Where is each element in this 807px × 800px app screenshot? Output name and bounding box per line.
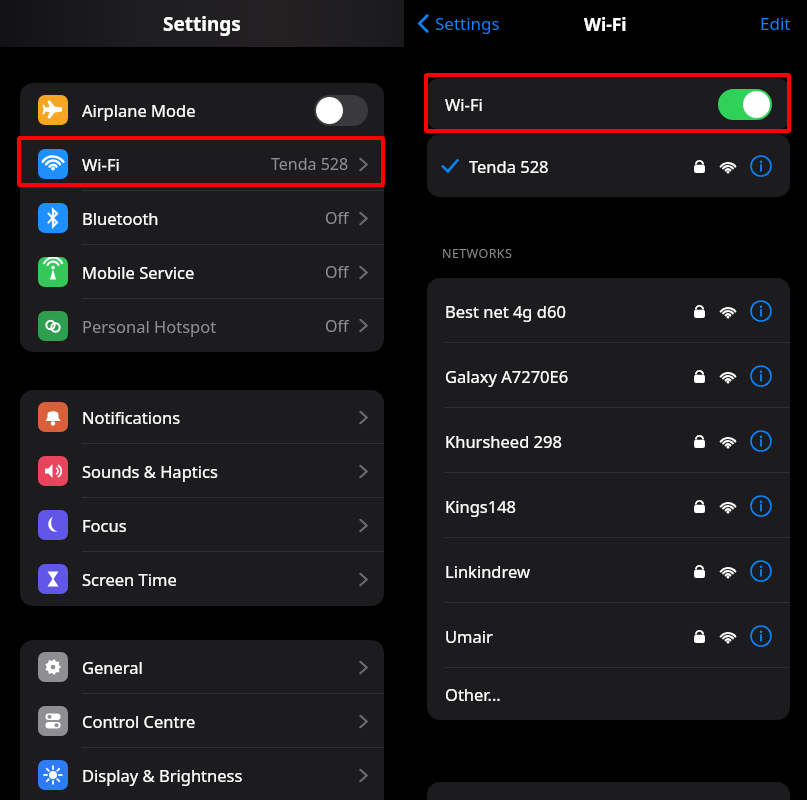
staticText: Personal Hotspot (82, 315, 217, 337)
staticText: Galaxy A7270E6 (445, 365, 569, 387)
staticText: Tenda 528 (469, 155, 549, 177)
button[interactable]: Airplane Mode (20, 83, 384, 137)
staticText: Settings (163, 11, 241, 37)
staticText: Off (325, 207, 349, 229)
staticText: Wi-Fi (445, 93, 483, 115)
button[interactable]: Kings148 (427, 473, 790, 538)
staticText: Mobile Service (82, 261, 195, 283)
staticText: Other... (445, 683, 501, 705)
button[interactable]: Sounds & Haptics (20, 444, 384, 498)
button[interactable]: Display & Brightness (20, 748, 384, 800)
button[interactable]: Notifications (20, 390, 384, 444)
staticText: Wi-Fi (584, 12, 627, 36)
button[interactable]: Edit (760, 12, 791, 35)
button[interactable]: Network info (750, 155, 772, 177)
button[interactable]: Personal Hotspot (20, 299, 384, 352)
button[interactable]: Network info (750, 495, 772, 517)
button[interactable]: Galaxy A7270E6 (427, 343, 790, 408)
staticText: Notifications (82, 406, 181, 428)
button[interactable]: Mobile Service (20, 245, 384, 299)
button[interactable]: General (20, 640, 384, 694)
staticText: Bluetooth (82, 207, 159, 229)
button[interactable]: Focus (20, 498, 384, 552)
staticText: Khursheed 298 (445, 430, 562, 452)
staticText: Edit (760, 12, 791, 35)
button[interactable]: Wi-Fi (445, 78, 772, 130)
button[interactable]: Screen Time (20, 552, 384, 606)
staticText: Airplane Mode (82, 99, 196, 121)
staticText: Off (325, 315, 349, 337)
button[interactable]: Best net 4g d60 (427, 278, 790, 343)
button[interactable]: Control Centre (20, 694, 384, 748)
button[interactable]: Network info (750, 430, 772, 452)
button[interactable]: Network info (750, 560, 772, 582)
staticText: Sounds & Haptics (82, 460, 218, 482)
staticText: Tenda 528 (271, 153, 349, 175)
button[interactable]: Linkindrew (427, 538, 790, 603)
staticText: Off (325, 261, 349, 283)
staticText: Settings (435, 12, 500, 35)
button[interactable]: Network info (750, 625, 772, 647)
staticText: Screen Time (82, 568, 177, 590)
button[interactable]: Wi-Fi (20, 137, 384, 191)
staticText: Focus (82, 514, 127, 536)
staticText: Linkindrew (445, 560, 530, 582)
button[interactable]: Tenda 528 (441, 134, 772, 197)
staticText: Best net 4g d60 (445, 300, 566, 322)
staticText: Wi-Fi (82, 153, 120, 175)
staticText: Display & Brightness (82, 764, 243, 786)
staticText: Umair (445, 625, 493, 647)
button[interactable]: Toggle on (718, 89, 772, 120)
button[interactable]: Settings (418, 12, 500, 35)
button[interactable]: Bluetooth (20, 191, 384, 245)
staticText: Kings148 (445, 495, 517, 517)
button[interactable]: Toggle off (314, 95, 368, 126)
button[interactable]: Umair (427, 603, 790, 668)
button[interactable]: Khursheed 298 (427, 408, 790, 473)
staticText: General (82, 656, 143, 678)
button[interactable]: Network info (750, 365, 772, 387)
staticText: NETWORKS (442, 245, 513, 262)
button[interactable]: Network info (750, 300, 772, 322)
button[interactable]: Other... (427, 668, 790, 720)
staticText: Control Centre (82, 710, 196, 732)
